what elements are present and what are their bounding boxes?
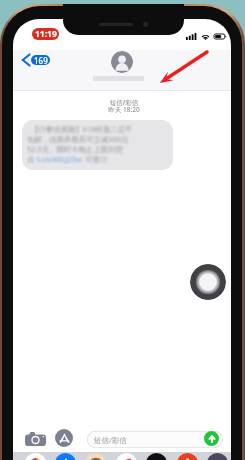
staticText: 包邮，优惠券最高可立减300元 [27,134,129,144]
staticText: 11:19 [35,28,57,40]
staticText: 【订餐优惠额】618特惠二店不 [27,124,133,134]
button[interactable]: App 1 [55,453,76,460]
button[interactable]: App 0 [25,453,46,460]
button[interactable]: App Store [55,429,73,447]
button[interactable]: Contact avatar [111,51,133,73]
button[interactable]: App 3 [116,453,137,460]
button[interactable]: App 2 [85,453,106,460]
staticText: 短信/彩信 [15,98,231,107]
staticText: 昨天 18:20 [15,105,231,114]
button[interactable]: 短信/彩信 [87,431,223,448]
button[interactable]: 【订餐优惠额】618特惠二店不 [22,120,173,170]
staticText: t.cn/A6Lj25sc [37,154,83,164]
staticText: 可退订 [83,154,108,164]
staticText: 点 [27,154,37,164]
staticText: 52.5元，限时今晚止上面到货 [27,144,123,154]
button[interactable]: 169 [20,52,52,68]
button[interactable]: App 6 [207,453,228,460]
button[interactable]: App 5 [177,453,198,460]
button[interactable]: App 4 [146,453,167,460]
button[interactable]: AssistiveTouch [190,264,226,300]
button[interactable]: Camera [23,427,47,451]
button[interactable]: Send [204,431,219,446]
staticText: 169 [34,55,48,65]
staticText: 短信/彩信 [94,435,127,445]
